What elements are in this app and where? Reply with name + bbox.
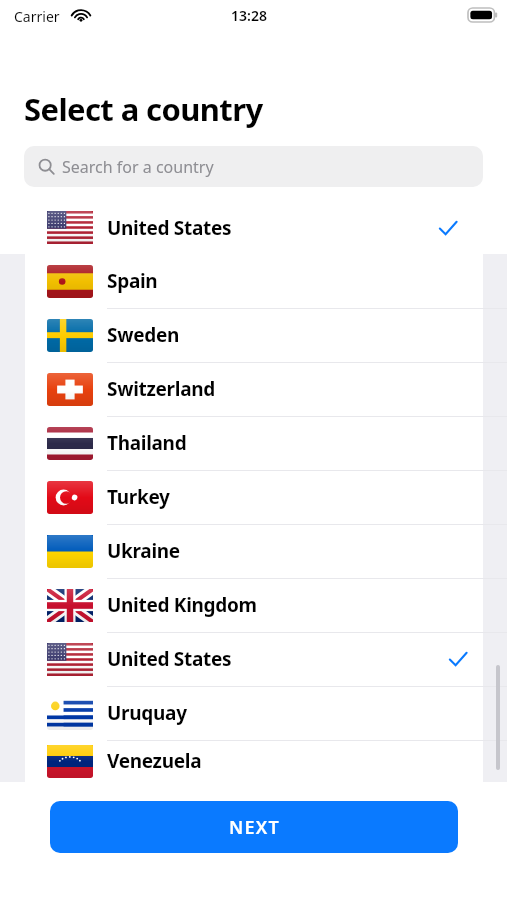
staticText: Sweden — [107, 322, 179, 348]
button[interactable]: Thailand — [25, 416, 483, 470]
button[interactable]: Turkey — [25, 470, 483, 524]
button[interactable]: Venezuela — [25, 740, 483, 782]
button[interactable]: United Kingdom — [25, 578, 483, 632]
staticText: 13:28 — [231, 6, 267, 25]
staticText: Turkey — [107, 484, 170, 510]
staticText: Select a country — [24, 88, 263, 130]
staticText: Venezuela — [107, 748, 202, 774]
button[interactable]: United States — [25, 632, 483, 686]
staticText: Uruquay — [107, 700, 187, 726]
other: Selected — [436, 216, 460, 240]
staticText: Spain — [107, 268, 158, 294]
staticText: United Kingdom — [107, 592, 257, 618]
staticText: Thailand — [107, 430, 187, 456]
staticText: United States — [107, 646, 232, 672]
staticText: Carrier — [14, 7, 60, 26]
button[interactable]: Spain — [25, 254, 483, 308]
button[interactable]: NEXT — [50, 801, 458, 853]
button[interactable]: United States — [0, 201, 507, 254]
button[interactable]: Sweden — [25, 308, 483, 362]
button[interactable]: Ukraine — [25, 524, 483, 578]
button[interactable]: Search for a country — [24, 146, 483, 187]
button[interactable]: Switzerland — [25, 362, 483, 416]
staticText: Switzerland — [107, 376, 215, 402]
button[interactable]: Uruquay — [25, 686, 483, 740]
staticText: Ukraine — [107, 538, 180, 564]
staticText: Search for a country — [62, 156, 214, 178]
staticText: United States — [107, 215, 232, 241]
other: Selected — [446, 647, 470, 671]
staticText: NEXT — [229, 815, 280, 840]
